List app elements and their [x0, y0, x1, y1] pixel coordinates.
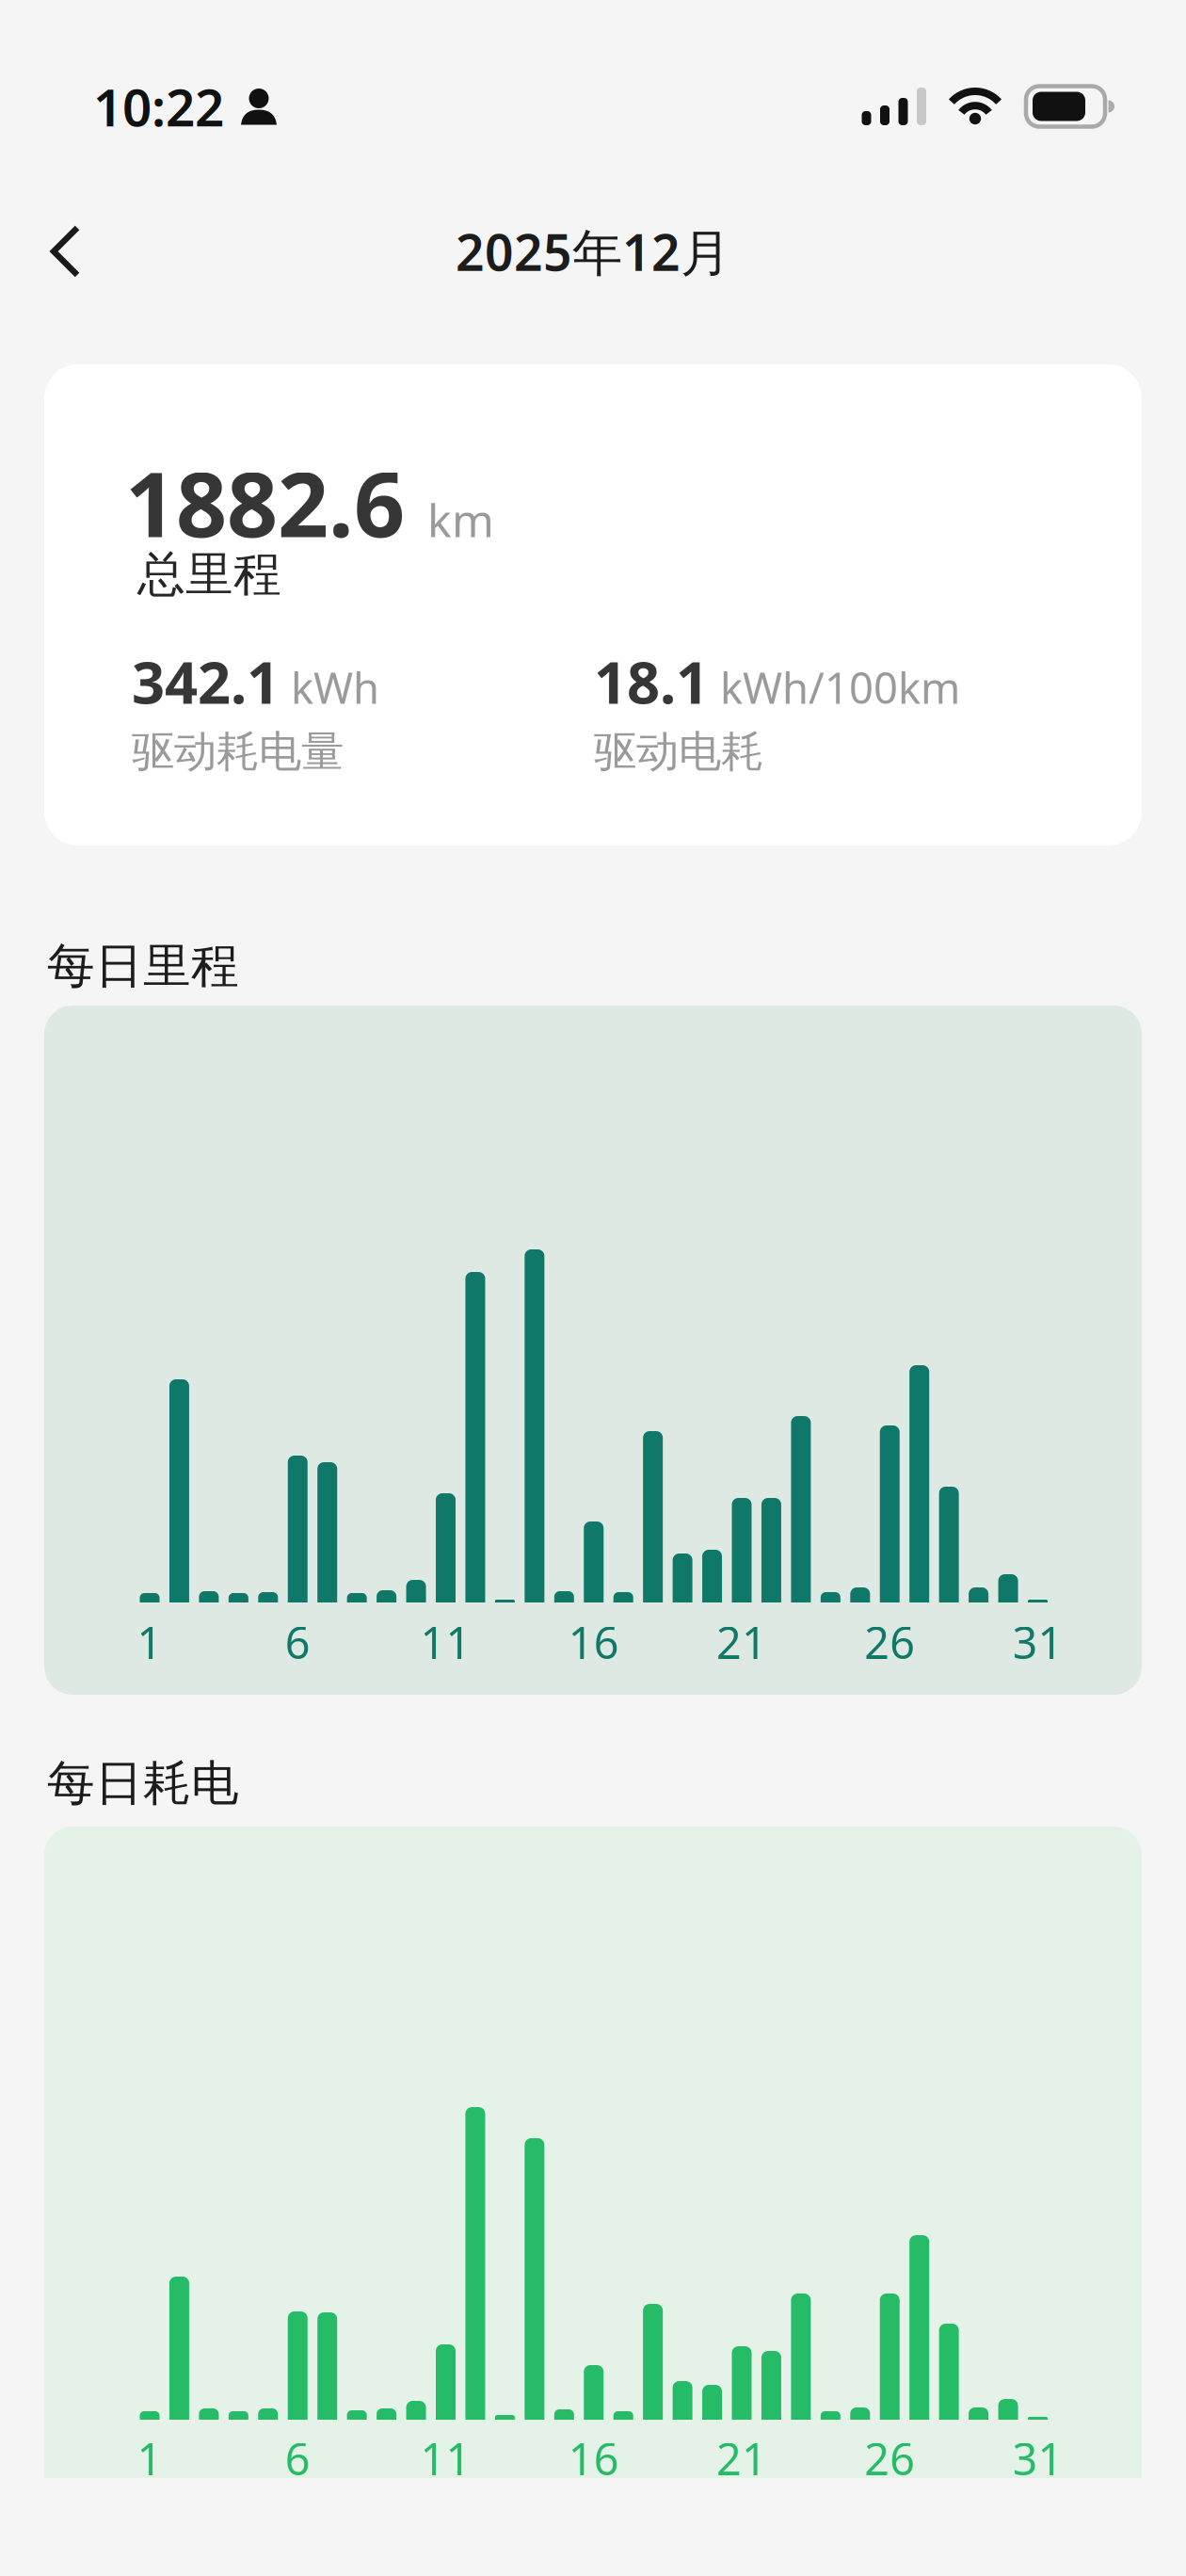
staticText: 31: [1012, 2429, 1063, 2487]
staticText: 10:22: [93, 72, 224, 141]
staticText: 21: [716, 1613, 767, 1671]
staticText: 1882.6: [125, 443, 405, 562]
staticText: 每日里程: [47, 937, 239, 995]
staticText: 1: [137, 1613, 162, 1671]
staticText: 11: [420, 2429, 471, 2487]
staticText: 2025年12月: [456, 218, 730, 285]
staticText: 18.1: [594, 643, 709, 720]
staticText: 11: [420, 1613, 471, 1671]
staticText: kWh/100km: [720, 659, 960, 716]
staticText: 342.1: [132, 643, 280, 720]
staticText: 16: [568, 1613, 619, 1671]
staticText: 总里程: [137, 545, 281, 604]
staticText: km: [427, 490, 494, 550]
button[interactable]: [0, 228, 106, 275]
staticText: 16: [568, 2429, 619, 2487]
staticText: 驱动耗电量: [132, 725, 344, 778]
staticText: 26: [864, 2429, 915, 2487]
staticText: 1: [137, 2429, 162, 2487]
staticText: 每日耗电: [47, 1754, 239, 1813]
staticText: 21: [716, 2429, 767, 2487]
staticText: 31: [1012, 1613, 1063, 1671]
staticText: kWh: [291, 659, 379, 716]
staticText: 26: [864, 1613, 915, 1671]
staticText: 6: [285, 2429, 310, 2487]
staticText: 6: [285, 1613, 310, 1671]
staticText: 驱动电耗: [594, 725, 763, 778]
